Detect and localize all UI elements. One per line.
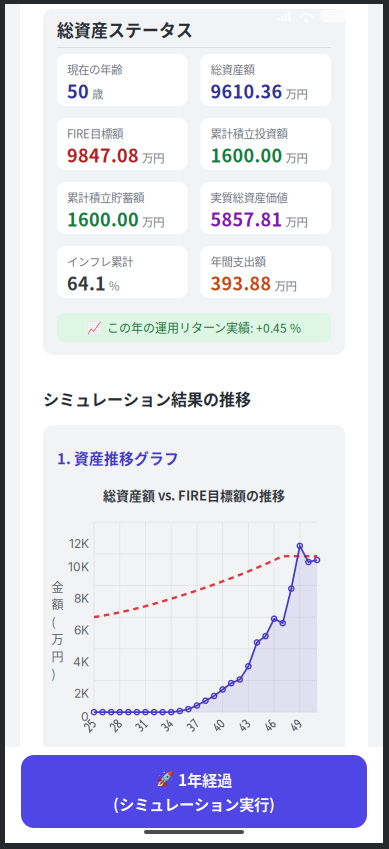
staticText: 64.1 — [67, 269, 106, 296]
staticText: 累計積立貯蓄額 — [67, 189, 144, 205]
staticText: 1600.00 — [210, 141, 282, 168]
staticText: 📈 — [87, 320, 102, 335]
staticText: 1年経過 — [178, 768, 232, 790]
staticText: 9610.36 — [210, 77, 282, 104]
staticText: 393.88 — [210, 269, 271, 296]
button[interactable]: 🚀 — [21, 755, 367, 828]
staticText: 9847.08 — [67, 141, 139, 168]
staticText: 年間支出額 — [210, 253, 265, 269]
staticText: 万円 — [142, 149, 164, 166]
staticText: 万円 — [285, 213, 307, 230]
staticText: 現在の年齢 — [67, 61, 122, 77]
staticText: % — [109, 277, 120, 294]
staticText: FIRE目標額 — [67, 125, 123, 141]
staticText: 歳 — [92, 85, 103, 102]
staticText: 総資産ステータス — [57, 17, 193, 42]
staticText: 総資産額 — [210, 61, 254, 77]
staticText: 8K — [74, 591, 89, 606]
staticText: 総資産額 vs. FIRE目標額の推移 — [103, 485, 285, 504]
staticText: 5857.81 — [210, 205, 282, 232]
staticText: 万円 — [285, 85, 307, 102]
staticText: 4K — [73, 654, 89, 669]
staticText: 1600.00 — [67, 205, 139, 232]
staticText: 10K — [68, 559, 89, 574]
staticText: 2K — [74, 686, 89, 701]
staticText: 万円 — [274, 277, 296, 294]
staticText: (シミュレーション実行) — [113, 792, 275, 815]
staticText: 🚀 — [156, 771, 174, 788]
staticText: 累計積立投資額 — [210, 125, 287, 141]
staticText: 12K — [69, 536, 89, 551]
staticText: 万円 — [285, 149, 307, 166]
staticText: 6K — [74, 623, 89, 637]
staticText: 金 額 ( 万 円 ) — [51, 578, 63, 682]
staticText: この年の運用リターン実績: +0.45 % — [107, 319, 301, 336]
staticText: 実質総資産価値 — [210, 189, 287, 205]
staticText: シミュレーション結果の推移 — [43, 387, 251, 410]
staticText: 50 — [67, 77, 89, 104]
staticText: インフレ累計 — [67, 253, 133, 269]
staticText: 1. 資産推移グラフ — [57, 447, 179, 468]
staticText: 0 — [81, 709, 89, 724]
staticText: 万円 — [142, 213, 164, 230]
